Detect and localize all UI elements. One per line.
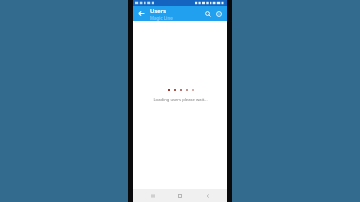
staticText: Users: [150, 7, 167, 15]
button[interactable]: Users: [150, 7, 202, 21]
button[interactable]: More options: [213, 8, 224, 19]
button[interactable]: Back: [200, 189, 216, 202]
button[interactable]: Back: [136, 8, 147, 19]
button[interactable]: Search: [202, 8, 213, 19]
button[interactable]: Recents: [145, 189, 161, 202]
button[interactable]: Home: [172, 189, 188, 202]
staticText: Loading users please wait...: [153, 97, 208, 103]
staticText: Magic Line: [150, 15, 173, 21]
